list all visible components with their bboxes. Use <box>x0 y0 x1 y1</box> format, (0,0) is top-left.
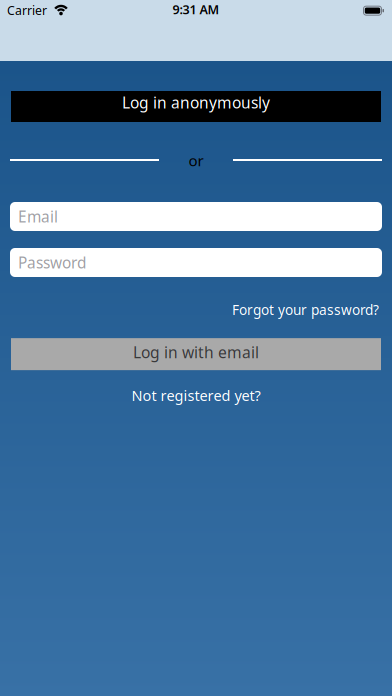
button[interactable]: Forgot your password? <box>232 300 379 318</box>
staticText: Log in with email <box>133 342 259 362</box>
button[interactable]: Password <box>10 248 382 277</box>
button[interactable]: Log in anonymously <box>11 91 381 122</box>
button[interactable]: Email <box>10 202 382 231</box>
staticText: Email <box>18 206 58 227</box>
staticText: 9:31 AM <box>172 1 219 18</box>
staticText: Carrier <box>7 2 47 18</box>
staticText: Password <box>18 252 86 273</box>
staticText: Not registered yet? <box>131 386 260 405</box>
staticText: Log in anonymously <box>122 92 270 113</box>
button[interactable]: Log in with email <box>11 338 381 370</box>
staticText: Forgot your password? <box>232 300 379 319</box>
staticText: or <box>188 150 203 170</box>
button[interactable]: Not registered yet? <box>131 386 260 405</box>
